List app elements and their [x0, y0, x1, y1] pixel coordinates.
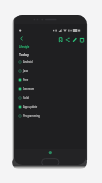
button[interactable]: Back [17, 34, 26, 43]
button[interactable]: App update [15, 102, 86, 111]
button[interactable]: Programming [15, 111, 86, 120]
staticText: Free [23, 78, 29, 82]
button[interactable]: Icecream [15, 84, 86, 93]
button[interactable]: Bookmark [56, 34, 65, 46]
staticText: Android [23, 60, 33, 64]
button[interactable]: Edit [70, 34, 79, 46]
staticText: Today [19, 52, 29, 57]
staticText: Java [23, 69, 28, 73]
button[interactable]: Delete [77, 34, 86, 46]
staticText: Solid [23, 96, 29, 100]
button[interactable]: Java [15, 66, 86, 75]
button[interactable]: Solid [15, 93, 86, 102]
staticText: Programming [23, 114, 40, 118]
button[interactable]: Android [15, 57, 86, 66]
button[interactable]: Free [15, 75, 86, 84]
button[interactable]: Share [63, 34, 72, 46]
staticText: App update [23, 105, 38, 109]
staticText: Icecream [23, 87, 35, 91]
staticText: Lifestyle [19, 45, 30, 49]
